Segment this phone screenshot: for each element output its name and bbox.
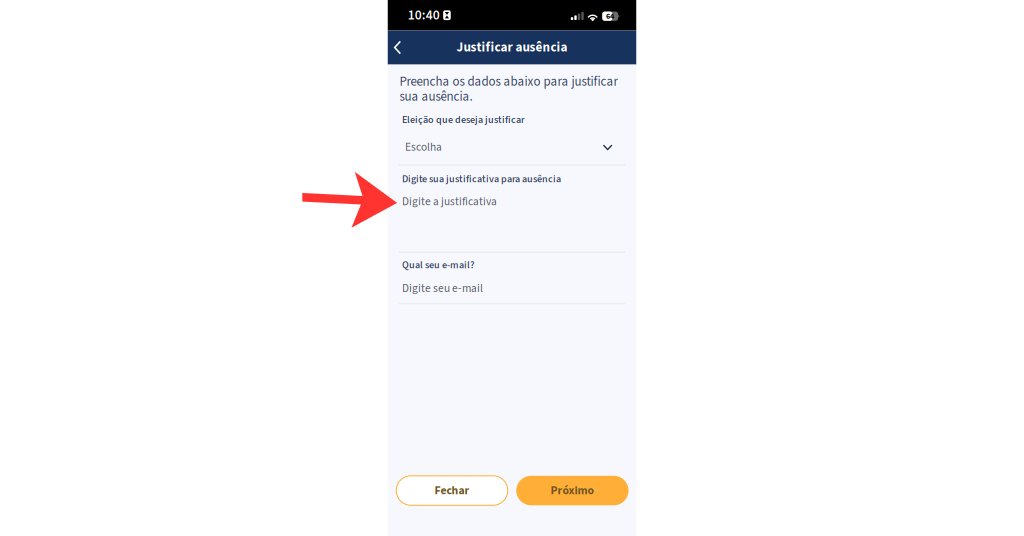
button[interactable]: Digite sua justificativa para ausência: [399, 165, 624, 253]
staticText: Preencha os dados abaixo para justificar: [399, 73, 617, 91]
staticText: Fechar: [434, 482, 469, 499]
staticText: 10:40: [408, 5, 440, 25]
staticText: Qual seu e-mail?: [402, 258, 474, 272]
staticText: Justificar ausência: [456, 38, 567, 57]
staticText: Escolha: [405, 139, 442, 155]
staticText: Eleição que deseja justificar: [402, 112, 525, 127]
staticText: 64: [606, 10, 614, 22]
button[interactable]: Voltar: [388, 30, 408, 65]
button[interactable]: Eleição que deseja justificar: [399, 106, 624, 165]
staticText: Digite a justificativa: [402, 194, 497, 210]
staticText: sua ausência.: [399, 87, 472, 106]
staticText: Digite sua justificativa para ausência: [402, 172, 561, 186]
staticText: Próximo: [550, 482, 594, 499]
button[interactable]: Qual seu e-mail?: [399, 253, 624, 304]
staticText: Digite seu e-mail: [402, 280, 483, 296]
button[interactable]: Próximo: [516, 476, 628, 505]
button[interactable]: Fechar: [396, 476, 508, 505]
